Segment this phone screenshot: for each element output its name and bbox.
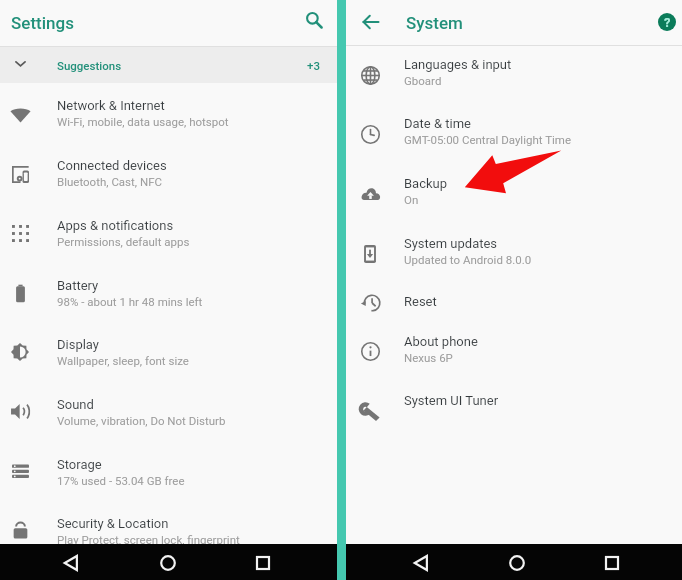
staticText: About phone xyxy=(404,334,478,349)
button[interactable]: Back xyxy=(64,555,78,571)
button[interactable]: About phone xyxy=(346,320,682,380)
button[interactable]: System updates xyxy=(346,222,682,282)
staticText: Languages & input xyxy=(404,57,512,72)
staticText: Sound xyxy=(57,397,94,412)
button[interactable]: Suggestions xyxy=(0,47,337,83)
button[interactable]: Back xyxy=(414,555,428,571)
staticText: Backup xyxy=(404,176,448,191)
staticText: System xyxy=(406,13,463,33)
button[interactable]: Recent apps xyxy=(605,556,619,570)
staticText: Wallpaper, sleep, font size xyxy=(57,354,189,367)
staticText: Nexus 6P xyxy=(404,351,453,364)
staticText: Bluetooth, Cast, NFC xyxy=(57,175,162,188)
staticText: Reset xyxy=(404,294,437,309)
button[interactable]: Security & Location xyxy=(0,502,337,562)
staticText: 98% - about 1 hr 48 mins left xyxy=(57,295,203,308)
button[interactable]: Home xyxy=(509,555,525,571)
button[interactable]: Date & time xyxy=(346,102,682,162)
staticText: Network & Internet xyxy=(57,98,165,113)
button[interactable]: Languages & input xyxy=(346,43,682,103)
staticText: 17% used - 53.04 GB free xyxy=(57,474,185,487)
button[interactable]: Battery xyxy=(0,264,337,324)
staticText: System UI Tuner xyxy=(404,393,499,408)
staticText: +3 xyxy=(307,59,320,72)
staticText: Security & Location xyxy=(57,516,169,531)
button[interactable]: Connected devices xyxy=(0,144,337,204)
button[interactable]: System UI Tuner xyxy=(346,379,682,419)
button[interactable]: Storage xyxy=(0,443,337,503)
button[interactable]: Search xyxy=(299,5,330,36)
staticText: Updated to Android 8.0.0 xyxy=(404,253,532,266)
button[interactable]: Apps & notifications xyxy=(0,204,337,264)
staticText: Gboard xyxy=(404,74,442,87)
staticText: Wi-Fi, mobile, data usage, hotspot xyxy=(57,115,229,128)
button[interactable]: Reset xyxy=(346,280,682,320)
staticText: On xyxy=(404,193,419,206)
button[interactable]: Recent apps xyxy=(256,556,270,570)
button[interactable]: Network & Internet xyxy=(0,84,337,144)
button[interactable]: Backup xyxy=(346,162,682,222)
staticText: Suggestions xyxy=(57,59,122,72)
staticText: Permissions, default apps xyxy=(57,235,190,248)
staticText: Play Protect, screen lock, fingerprint xyxy=(57,533,240,546)
staticText: Settings xyxy=(11,13,74,33)
staticText: Battery xyxy=(57,278,99,293)
staticText: Display xyxy=(57,337,99,352)
button[interactable]: Back xyxy=(355,6,386,37)
staticText: System updates xyxy=(404,236,498,251)
button[interactable]: Display xyxy=(0,323,337,383)
staticText: Apps & notifications xyxy=(57,218,174,233)
button[interactable]: Help xyxy=(652,7,682,37)
staticText: Storage xyxy=(57,457,102,472)
button[interactable]: Sound xyxy=(0,383,337,443)
staticText: Volume, vibration, Do Not Disturb xyxy=(57,414,226,427)
button[interactable]: Home xyxy=(160,555,176,571)
staticText: Date & time xyxy=(404,116,471,131)
staticText: Connected devices xyxy=(57,158,167,173)
staticText: ? xyxy=(664,15,671,30)
staticText: GMT-05:00 Central Daylight Time xyxy=(404,133,571,146)
